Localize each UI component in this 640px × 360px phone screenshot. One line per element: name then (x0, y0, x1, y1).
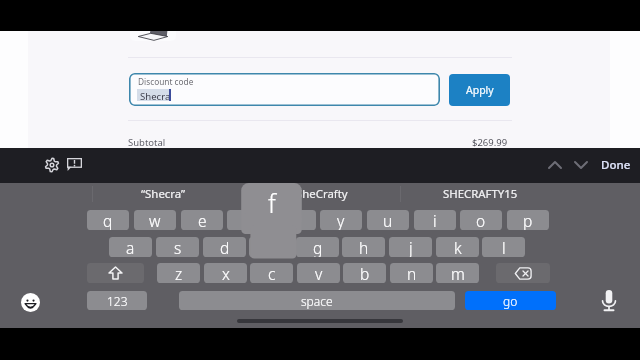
button[interactable]: k (436, 237, 479, 257)
button[interactable]: j (389, 237, 432, 257)
button[interactable]: go (465, 291, 556, 310)
staticText: y (337, 210, 345, 230)
staticText: b (360, 263, 370, 283)
button[interactable]: g (296, 237, 339, 257)
staticText: Discount code (138, 76, 194, 87)
button[interactable]: space (179, 291, 455, 310)
button[interactable]: Feedback (63, 150, 86, 179)
button[interactable] (130, 31, 176, 41)
staticText: Done (601, 157, 631, 173)
staticText: a (126, 237, 135, 257)
button[interactable]: Backspace (496, 263, 550, 283)
staticText: l (502, 237, 506, 257)
button[interactable]: Discount code (129, 73, 440, 106)
button[interactable]: q (87, 210, 129, 230)
staticText: SheCrafty (296, 186, 348, 202)
staticText: w (149, 210, 161, 230)
staticText: j (409, 237, 413, 257)
button[interactable]: w (134, 210, 176, 230)
staticText: x (222, 263, 230, 283)
staticText: q (103, 210, 113, 230)
button[interactable]: SheCrafty (262, 183, 382, 205)
button[interactable]: Shift (87, 263, 144, 283)
button[interactable]: r (227, 210, 269, 230)
button[interactable]: b (343, 263, 386, 283)
staticText: g (313, 237, 323, 257)
button[interactable]: u (367, 210, 409, 230)
staticText: h (359, 237, 369, 257)
button[interactable]: Previous field (544, 150, 565, 179)
button[interactable]: Emoji keyboard (19, 290, 42, 314)
staticText: v (315, 263, 323, 283)
staticText: Apply (466, 83, 494, 97)
button[interactable]: x (204, 263, 247, 283)
button[interactable]: 123 (87, 291, 147, 310)
button[interactable]: s (156, 237, 199, 257)
button[interactable]: a (109, 237, 152, 257)
button[interactable]: o (460, 210, 502, 230)
button[interactable]: v (297, 263, 340, 283)
staticText: z (175, 263, 183, 283)
button[interactable]: Settings (40, 150, 63, 179)
button[interactable]: l (482, 237, 525, 257)
button[interactable]: d (203, 237, 246, 257)
staticText: $269.99 (472, 136, 508, 148)
staticText: Shecra (140, 90, 171, 103)
staticText: go (503, 293, 518, 309)
staticText: space (301, 293, 333, 309)
staticText: c (268, 263, 276, 283)
staticText: f (268, 186, 276, 220)
button[interactable]: c (250, 263, 293, 283)
staticText: d (220, 237, 230, 257)
button[interactable]: i (414, 210, 456, 230)
staticText: i (433, 210, 437, 230)
button[interactable]: SHECRAFTY15 (410, 183, 551, 205)
staticText: p (523, 210, 533, 230)
staticText: k (454, 237, 462, 257)
button[interactable]: y (320, 210, 362, 230)
button[interactable]: t (274, 210, 316, 230)
button[interactable]: Apply (449, 74, 510, 106)
staticText: Subtotal (128, 136, 166, 148)
staticText: o (476, 210, 486, 230)
button[interactable]: Done (598, 150, 634, 179)
button[interactable]: z (157, 263, 200, 283)
staticText: n (407, 263, 417, 283)
button[interactable]: m (436, 263, 479, 283)
button[interactable]: e (181, 210, 223, 230)
staticText: m (451, 263, 465, 283)
button[interactable]: h (342, 237, 385, 257)
button[interactable]: “Shecra” (63, 183, 263, 205)
button[interactable]: n (390, 263, 433, 283)
staticText: “Shecra” (141, 186, 186, 202)
button[interactable]: p (507, 210, 549, 230)
staticText: SHECRAFTY15 (443, 186, 518, 202)
staticText: 123 (107, 293, 128, 309)
staticText: u (383, 210, 393, 230)
button[interactable]: Dictation (598, 286, 620, 314)
button[interactable]: Next field (570, 150, 591, 179)
staticText: e (198, 210, 207, 230)
staticText: s (174, 237, 182, 257)
